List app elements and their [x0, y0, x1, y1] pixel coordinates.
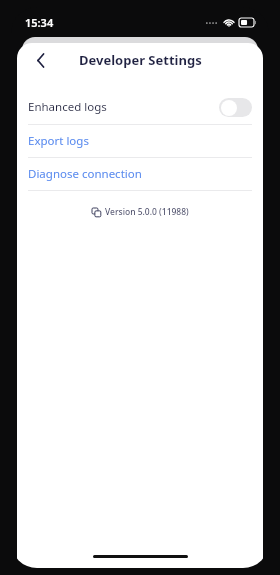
button[interactable]: Enhanced logs	[17, 90, 263, 124]
button[interactable]: Version 5.0.0 (11988)	[17, 202, 263, 222]
staticText: 15:34	[25, 15, 54, 30]
staticText: Diagnose connection	[28, 166, 142, 182]
staticText: Version 5.0.0 (11988)	[105, 206, 189, 218]
button[interactable]: Back	[26, 45, 56, 75]
staticText: Enhanced logs	[28, 99, 219, 115]
button[interactable]: Export logs	[17, 125, 263, 157]
button[interactable]: Diagnose connection	[17, 158, 263, 190]
staticText: Export logs	[28, 133, 89, 149]
staticText: Developer Settings	[79, 51, 202, 69]
